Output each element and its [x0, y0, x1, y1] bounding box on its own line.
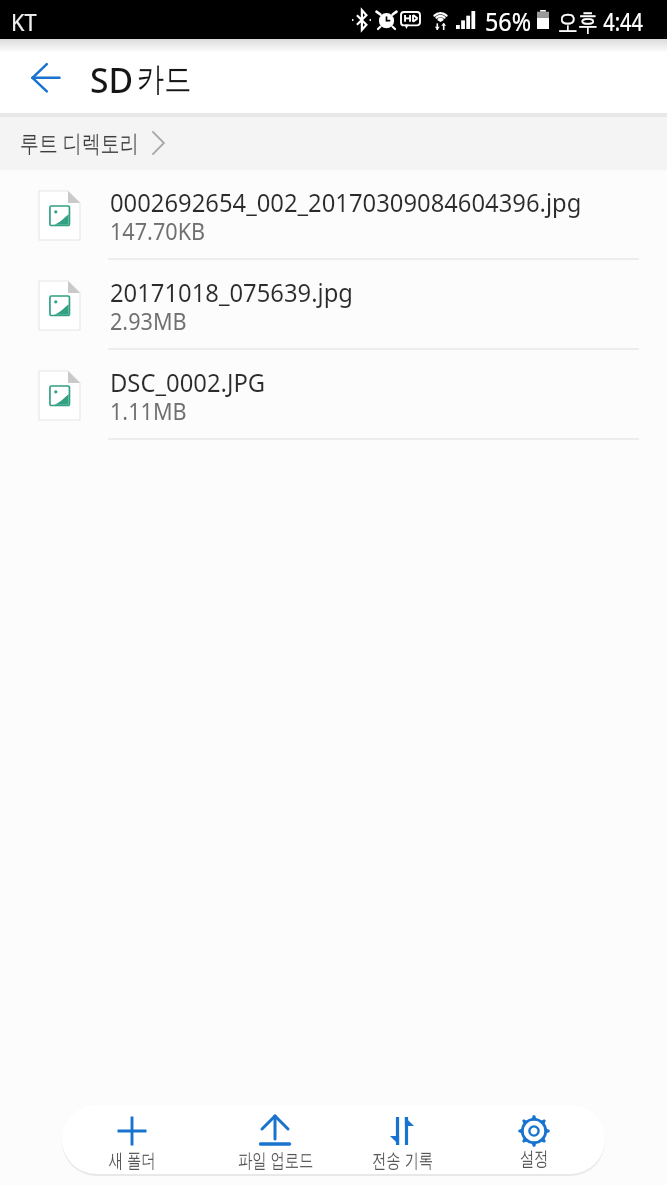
staticText: 56%: [485, 4, 532, 38]
staticText: 설정: [520, 1146, 549, 1171]
button[interactable]: 20171018_075639.jpg: [0, 260, 667, 350]
button[interactable]: 0002692654_002_20170309084604396.jpg: [0, 170, 667, 260]
button[interactable]: 루트 디렉토리: [20, 126, 166, 159]
staticText: 147.70KB: [110, 215, 206, 246]
button[interactable]: 전송 기록: [371, 1105, 433, 1174]
button[interactable]: DSC_0002.JPG: [0, 350, 667, 440]
staticText: 20171018_075639.jpg: [110, 275, 354, 309]
staticText: 루트 디렉토리: [20, 126, 139, 159]
staticText: DSC_0002.JPG: [110, 365, 265, 399]
button[interactable]: 새 폴더: [96, 1105, 168, 1174]
staticText: 오후 4:44: [558, 4, 644, 38]
button[interactable]: Back: [10, 41, 80, 111]
staticText: 1.11MB: [110, 395, 187, 426]
staticText: 카드: [137, 58, 191, 101]
button[interactable]: 설정: [503, 1105, 565, 1174]
staticText: 0002692654_002_20170309084604396.jpg: [110, 185, 582, 219]
staticText: 2.93MB: [110, 305, 187, 336]
staticText: KT: [11, 6, 37, 37]
staticText: 새 폴더: [109, 1146, 156, 1173]
button[interactable]: 파일 업로드: [242, 1105, 308, 1174]
staticText: 전송 기록: [372, 1146, 434, 1173]
staticText: SD: [90, 57, 142, 103]
staticText: 파일 업로드: [238, 1146, 314, 1173]
